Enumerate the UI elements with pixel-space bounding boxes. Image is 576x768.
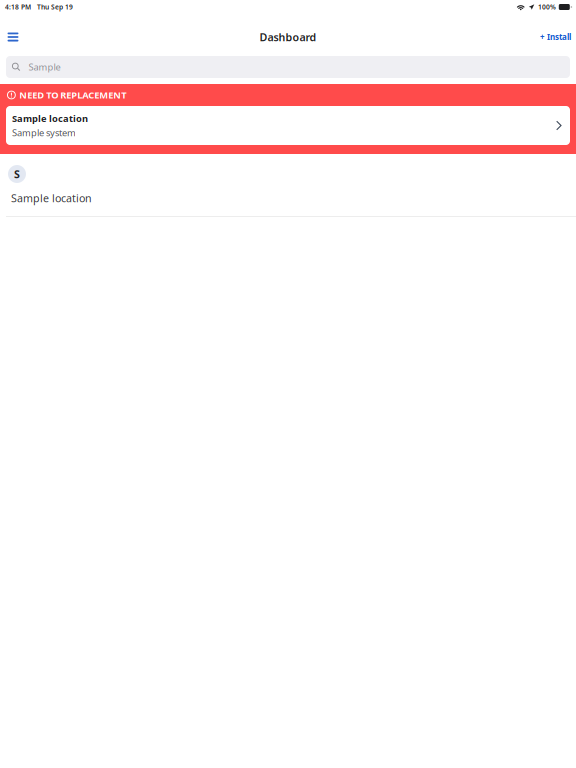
button[interactable]: Sample location — [6, 106, 570, 145]
button[interactable]: Sample — [6, 56, 570, 78]
staticText: S — [14, 167, 20, 181]
staticText: 4:18 PM — [5, 3, 31, 11]
staticText: Sample location — [12, 112, 88, 124]
button[interactable]: + Install — [534, 23, 575, 51]
button[interactable]: S — [0, 154, 576, 216]
staticText: Sample location — [11, 191, 92, 205]
staticText: 100% — [538, 3, 556, 11]
staticText: + Install — [540, 32, 571, 42]
staticText: NEED TO REPLACEMENT — [19, 89, 126, 101]
staticText: Dashboard — [259, 30, 316, 44]
staticText: Thu Sep 19 — [37, 3, 73, 11]
staticText: Sample system — [12, 126, 76, 139]
button[interactable]: Menu — [1, 23, 25, 51]
staticText: Sample — [28, 61, 60, 73]
